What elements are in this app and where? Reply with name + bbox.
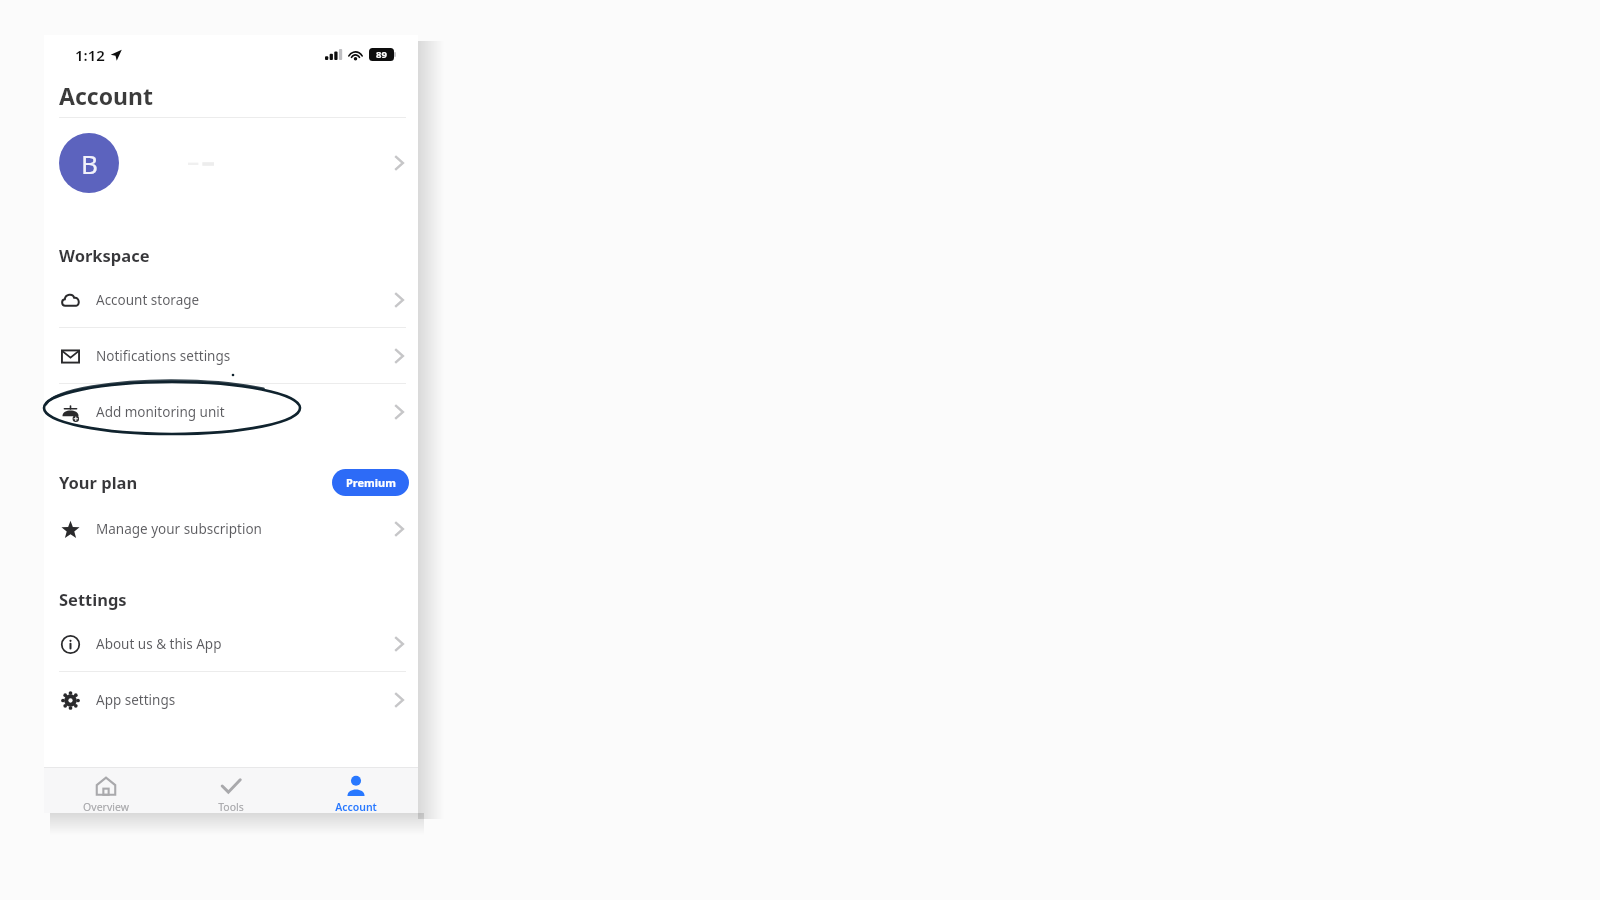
button[interactable]: Add monitoring unit (44, 384, 418, 439)
button[interactable]: Overview (44, 768, 168, 813)
staticText: Your plan (59, 471, 138, 493)
staticText: Add monitoring unit (96, 403, 225, 421)
button[interactable]: About us & this App (44, 616, 418, 671)
button[interactable]: Manage your subscription (44, 501, 418, 556)
staticText: Manage your subscription (96, 520, 262, 538)
staticText: 89 (376, 48, 387, 61)
button[interactable]: Premium (332, 469, 409, 496)
button[interactable]: App settings (44, 672, 418, 727)
staticText: Account storage (96, 291, 200, 309)
staticText: 1:12 (75, 45, 105, 65)
staticText: B (81, 146, 98, 181)
staticText: Account (59, 80, 153, 111)
button[interactable]: Tools (168, 768, 293, 813)
other: Overview (95, 775, 117, 797)
button[interactable]: Account storage (44, 272, 418, 327)
staticText: Overview (83, 800, 129, 813)
other: Account (345, 775, 367, 797)
button[interactable]: B (44, 118, 418, 208)
button[interactable]: Account (293, 768, 418, 813)
staticText: Workspace (59, 244, 150, 266)
staticText: About us & this App (96, 635, 222, 653)
button[interactable]: Notifications settings (44, 328, 418, 383)
staticText: App settings (96, 691, 176, 709)
staticText: Premium (346, 475, 396, 490)
staticText: Tools (218, 800, 244, 813)
staticText: Account (335, 800, 377, 813)
staticText: Settings (59, 588, 127, 610)
other: Tools (220, 775, 242, 797)
staticText: Notifications settings (96, 347, 231, 365)
